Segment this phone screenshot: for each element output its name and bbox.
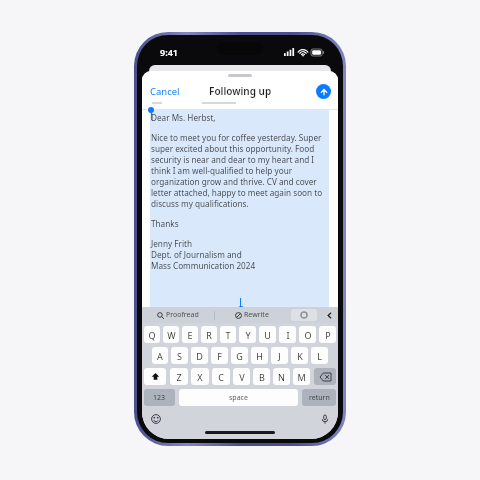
button[interactable]: C	[212, 368, 230, 385]
staticText: X	[197, 371, 203, 383]
staticText: U	[264, 329, 271, 341]
button[interactable]: E	[182, 326, 198, 343]
staticText: W	[167, 329, 176, 341]
button[interactable]: H	[251, 347, 268, 364]
staticText: T	[225, 329, 231, 341]
staticText: D	[196, 350, 203, 362]
staticText: E	[187, 329, 193, 341]
staticText: P	[325, 329, 331, 341]
staticText: G	[236, 350, 243, 362]
button[interactable]: Q	[144, 326, 160, 343]
staticText: Nice to meet you for coffee yesterday. S…	[151, 132, 328, 209]
staticText: Dept. of Journalism and	[151, 249, 242, 260]
button[interactable]: V	[233, 368, 250, 385]
button[interactable]: A	[152, 347, 168, 364]
button[interactable]: G	[231, 347, 248, 364]
staticText: Rewrite	[244, 310, 269, 320]
staticText: M	[297, 371, 306, 383]
button[interactable]: space	[179, 389, 298, 406]
staticText: Y	[245, 329, 251, 341]
button[interactable]: Z	[170, 368, 188, 385]
button[interactable]: O	[299, 326, 316, 343]
button[interactable]: F	[211, 347, 228, 364]
button[interactable]: D	[191, 347, 208, 364]
staticText: B	[259, 371, 265, 383]
staticText: Mass Communication 2024	[151, 260, 256, 271]
button[interactable]: return	[302, 389, 336, 406]
staticText: Q	[148, 329, 156, 341]
staticText: Jenny Frith	[151, 238, 193, 249]
staticText: S	[177, 350, 182, 362]
staticText: Proofread	[166, 310, 199, 320]
staticText: Cancel	[150, 85, 180, 98]
button[interactable]: 123	[144, 389, 175, 406]
button[interactable]: T	[220, 326, 236, 343]
button[interactable]: U	[259, 326, 276, 343]
button[interactable]: Cancel	[142, 82, 188, 101]
button[interactable]: I	[279, 326, 296, 343]
button[interactable]: Dictate	[318, 412, 331, 425]
staticText: K	[297, 350, 303, 362]
staticText: 9:41	[160, 46, 178, 58]
staticText: Z	[176, 371, 182, 383]
button[interactable]: X	[191, 368, 209, 385]
button[interactable]: J	[271, 347, 288, 364]
button[interactable]: L	[311, 347, 328, 364]
staticText: A	[157, 350, 163, 362]
button[interactable]: N	[273, 368, 290, 385]
button[interactable]: Collapse	[320, 307, 338, 323]
staticText: Dear Ms. Herbst,	[151, 112, 216, 123]
staticText: 123	[153, 393, 166, 403]
button[interactable]: Send	[316, 84, 331, 99]
staticText: Following up	[209, 84, 272, 98]
staticText: H	[256, 350, 263, 362]
staticText: space	[229, 393, 248, 403]
button[interactable]: M	[293, 368, 310, 385]
button[interactable]: Proofread	[142, 307, 214, 323]
staticText: V	[239, 371, 245, 383]
button[interactable]: Shift	[144, 368, 166, 385]
button[interactable]: P	[319, 326, 336, 343]
staticText: C	[218, 371, 224, 383]
button[interactable]: Rewrite	[215, 307, 288, 323]
button[interactable]: Backspace	[314, 368, 336, 385]
button[interactable]: K	[291, 347, 308, 364]
button[interactable]: Writing Tools	[291, 309, 317, 321]
staticText: Thanks	[151, 218, 179, 229]
staticText: J	[278, 350, 281, 362]
staticText: F	[217, 350, 222, 362]
button[interactable]: B	[253, 368, 270, 385]
staticText: L	[317, 350, 322, 362]
staticText: R	[206, 329, 212, 341]
button[interactable]: S	[171, 347, 188, 364]
button[interactable]: W	[163, 326, 179, 343]
staticText: N	[278, 371, 285, 383]
button[interactable]: R	[201, 326, 217, 343]
button[interactable]: Emoji	[149, 412, 162, 425]
staticText: return	[309, 393, 330, 403]
staticText: I	[286, 329, 290, 341]
button[interactable]: Y	[239, 326, 256, 343]
staticText: O	[304, 329, 312, 341]
